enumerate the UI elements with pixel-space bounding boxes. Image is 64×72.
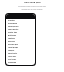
staticText: Garden bin — [8, 43, 18, 45]
staticText: Glassware — [8, 22, 18, 24]
staticText: Paint pots — [8, 52, 18, 54]
staticText: Light bulbs — [8, 46, 18, 48]
staticText: Car tyres — [8, 58, 17, 60]
staticText: Devices — [8, 40, 15, 42]
button[interactable]: Devices — [6, 39, 35, 42]
staticText: Paperboard — [8, 25, 19, 27]
staticText: Plastics — [8, 19, 15, 21]
staticText: Recycling bins — [24, 0, 41, 3]
staticText: Metal tins — [8, 31, 18, 33]
staticText: Textiles — [8, 37, 15, 39]
staticText: Batteries — [8, 34, 17, 36]
staticText: Food waste — [8, 28, 19, 30]
button[interactable]: Textiles — [6, 36, 35, 39]
staticText: Medicine — [8, 61, 17, 63]
button[interactable]: Timber — [6, 48, 35, 51]
button[interactable]: Paperboard — [6, 24, 35, 27]
staticText: Timber — [8, 49, 15, 51]
button[interactable]: Light bulbs — [6, 45, 35, 48]
button[interactable]: Used oils — [6, 54, 35, 57]
staticText: Used oils — [8, 55, 17, 57]
button[interactable]: Glassware — [6, 21, 35, 24]
button[interactable]: Metal tins — [6, 30, 35, 33]
staticText: Sorting waste properly helps our planet … — [18, 6, 46, 10]
button[interactable]: Car tyres — [6, 57, 35, 60]
button[interactable]: Garden bin — [6, 42, 35, 45]
button[interactable]: Food waste — [6, 27, 35, 30]
button[interactable]: Paint pots — [6, 51, 35, 54]
button[interactable]: Batteries — [6, 33, 35, 36]
button[interactable]: Plastics — [6, 18, 35, 21]
button[interactable]: Medicine — [6, 60, 35, 63]
